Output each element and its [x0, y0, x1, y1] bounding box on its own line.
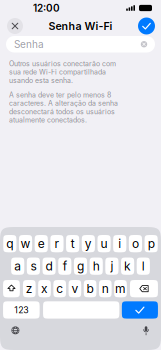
staticText: 12:00	[33, 2, 60, 14]
button[interactable]: u	[97, 235, 111, 252]
staticText: v	[71, 281, 78, 296]
button[interactable]: Shift	[3, 280, 20, 297]
button[interactable]: p	[145, 235, 158, 252]
staticText: s	[30, 259, 36, 273]
staticText: y	[85, 236, 92, 251]
button[interactable]: j	[105, 257, 118, 275]
staticText: i	[118, 236, 121, 251]
button[interactable]: s	[27, 257, 40, 275]
button[interactable]: t	[66, 235, 79, 252]
staticText: t	[71, 236, 75, 251]
staticText: f	[63, 259, 67, 273]
staticText: b	[87, 281, 94, 296]
staticText: h	[93, 259, 100, 273]
button[interactable]: l	[137, 257, 150, 275]
button[interactable]: Senha	[0, 36, 161, 52]
button[interactable]: Save password	[138, 17, 155, 34]
staticText: x	[41, 281, 48, 296]
staticText: p	[148, 236, 155, 251]
staticText: w	[20, 236, 30, 251]
staticText: d	[46, 259, 53, 273]
staticText: a	[14, 259, 21, 273]
button[interactable]: i	[113, 235, 126, 252]
button[interactable]: d	[42, 257, 56, 275]
staticText: q	[6, 236, 13, 251]
button[interactable]	[43, 301, 119, 319]
staticText: c	[56, 281, 63, 296]
staticText: g	[77, 259, 84, 273]
staticText: Senha	[14, 38, 44, 50]
button[interactable]: e	[35, 235, 48, 252]
button[interactable]: y	[82, 235, 95, 252]
staticText: A senha deve ter pelo menos 8 caracteres…	[9, 91, 118, 124]
button[interactable]: Next keyboard	[11, 326, 19, 334]
button[interactable]: z	[23, 280, 36, 297]
staticText: Senha Wi-Fi	[48, 19, 112, 32]
button[interactable]: q	[3, 235, 16, 252]
button[interactable]: 123	[3, 301, 40, 319]
button[interactable]: g	[74, 257, 87, 275]
button[interactable]: a	[11, 257, 24, 275]
button[interactable]: k	[121, 257, 134, 275]
button[interactable]: o	[129, 235, 142, 252]
button[interactable]: Return	[122, 301, 158, 319]
button[interactable]: m	[114, 280, 127, 297]
staticText: r	[54, 236, 59, 251]
button[interactable]: x	[38, 280, 51, 297]
button[interactable]: b	[84, 280, 96, 297]
button[interactable]: v	[68, 280, 81, 297]
button[interactable]: Dictation	[143, 326, 149, 335]
button[interactable]: n	[99, 280, 112, 297]
button[interactable]: w	[19, 235, 32, 252]
staticText: l	[142, 259, 145, 273]
button[interactable]: r	[50, 235, 63, 252]
staticText: Outros usuários conectarão com sua rede …	[9, 59, 116, 85]
staticText: o	[132, 236, 139, 251]
staticText: z	[26, 281, 33, 296]
staticText: m	[115, 281, 126, 296]
staticText: n	[102, 281, 109, 296]
button[interactable]: f	[58, 257, 71, 275]
button[interactable]: c	[53, 280, 66, 297]
staticText: k	[124, 259, 131, 273]
button[interactable]: h	[90, 257, 103, 275]
button[interactable]: Close	[7, 18, 23, 34]
staticText: j	[110, 259, 113, 273]
staticText: u	[100, 236, 107, 251]
staticText: e	[38, 236, 45, 251]
button[interactable]: Delete	[130, 280, 158, 297]
staticText: 123	[14, 305, 28, 315]
